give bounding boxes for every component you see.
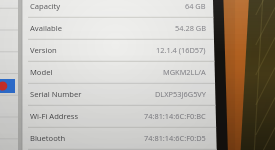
other: About [0, 0, 275, 150]
button[interactable]: Selected settings item [0, 79, 15, 93]
button[interactable]: Available: 54.28 GB [22, 17, 212, 39]
button[interactable]: Version: 12.1.4 (16D57) [22, 39, 212, 61]
button[interactable]: SEID [22, 139, 212, 150]
button[interactable]: Model: MGKM2LL/A [22, 61, 212, 83]
button[interactable]: Wi-Fi Address: 74:81:14:6C:F0:BC [22, 105, 212, 127]
button[interactable]: Serial Number: DLXP53J6G5VY [22, 83, 212, 105]
button[interactable]: Bluetooth: 74:81:14:6C:F0:D5 [22, 127, 212, 149]
button[interactable]: Capacity: 64 GB [22, 0, 212, 22]
